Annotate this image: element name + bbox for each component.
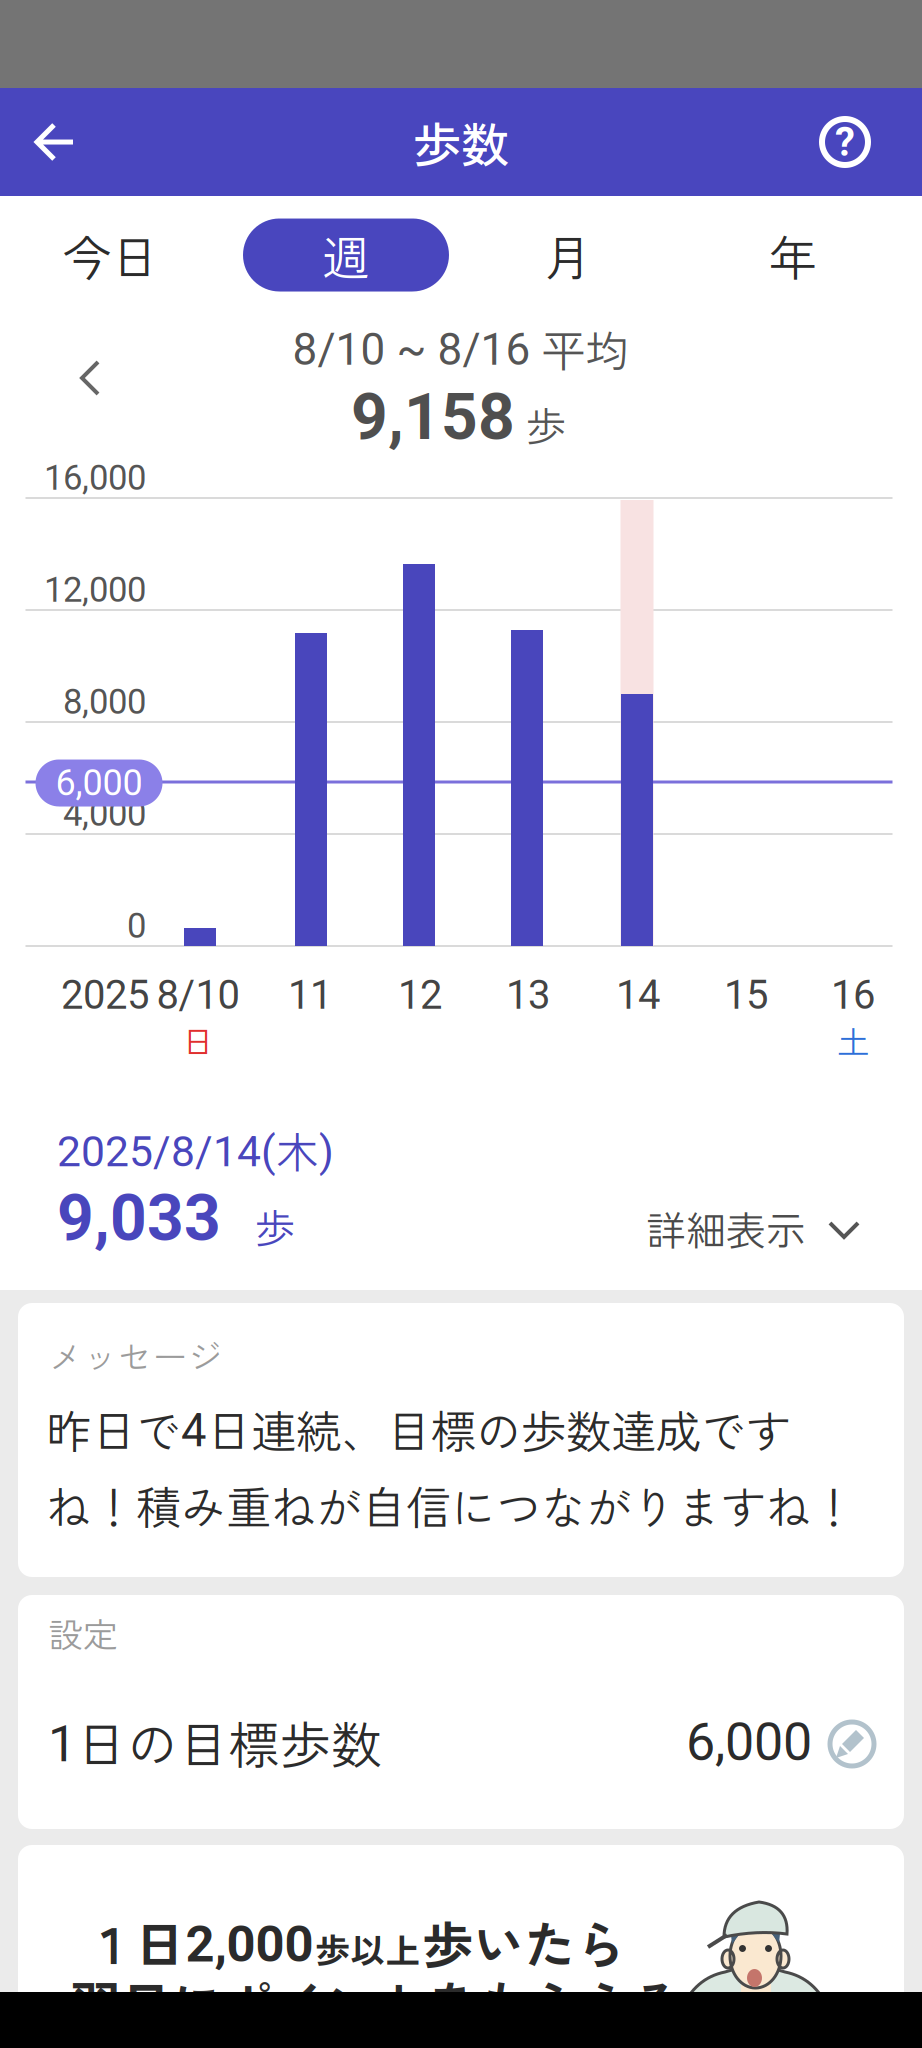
staticText: 歩以上 [315,1923,420,1974]
staticText: 日 [182,1017,214,1063]
button[interactable]: Previous week [82,362,98,394]
button[interactable]: 週 [243,218,449,291]
button[interactable]: 目標を編集 [826,1718,878,1770]
staticText: 設定 [48,1608,118,1658]
staticText: 16 [831,972,875,1018]
button[interactable]: Help [822,119,868,165]
staticText: 11 [288,972,332,1018]
staticText: 4,000 [63,794,146,834]
staticText: 週 [322,220,370,290]
staticText: メッセージ [48,1330,223,1380]
staticText: 2025/8/14(木) [57,1119,334,1181]
staticText: 12 [398,972,442,1018]
button[interactable]: 年 [708,218,878,292]
staticText: 1日の目標歩数 [48,1705,382,1779]
staticText: 詳細表示 [646,1199,806,1257]
staticText: 土 [837,1017,869,1063]
staticText: 昨日で4日連続、目標の歩数達成です [46,1396,791,1462]
staticText: 0 [127,906,146,946]
staticText: 歩 [255,1197,295,1255]
staticText: 歩数 [413,107,509,177]
staticText: 8/10 [156,972,239,1018]
button[interactable]: 今日 [26,218,196,292]
button[interactable]: 詳細表示 [646,1199,858,1257]
button[interactable]: 月 [483,218,653,292]
staticText: 6,000 [686,1711,812,1772]
staticText: 6,000 [55,762,142,804]
staticText: ね！積み重ねが自信につながりますね！ [46,1472,856,1538]
staticText: 翌日にポイントをもらえる [70,1965,682,2039]
staticText: 16,000 [44,458,146,498]
staticText: 8/10 ~ 8/16 平均 [292,316,629,380]
staticText: 15 [724,972,768,1018]
staticText: 歩いたら [422,1905,626,1979]
staticText: 2025 [61,972,149,1018]
staticText: 年 [769,220,817,290]
button[interactable]: キャンペーン [18,1845,904,2048]
staticText: ? [835,119,855,165]
staticText: 12,000 [44,570,146,610]
staticText: 8,000 [63,682,146,722]
staticText: 9,033 [57,1180,221,1255]
button[interactable]: Back [33,120,77,164]
staticText: １日2,000 [83,1905,313,1979]
staticText: 14 [616,972,660,1018]
staticText: 13 [506,972,550,1018]
staticText: 今日 [63,220,159,290]
staticText: 月 [544,220,592,290]
staticText: 歩 [526,395,566,453]
staticText: 9,158 [351,379,515,454]
